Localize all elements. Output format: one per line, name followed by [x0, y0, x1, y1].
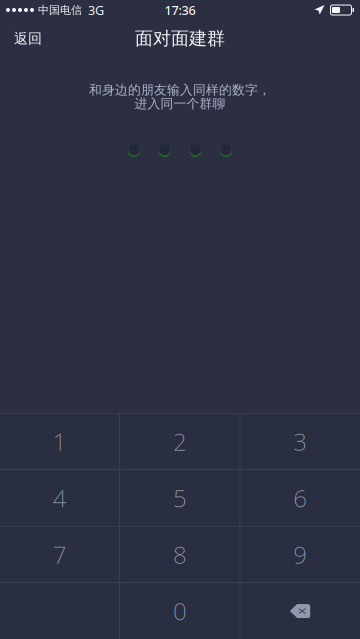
button[interactable]: 返回: [0, 22, 56, 55]
staticText: 0: [173, 595, 187, 627]
staticText: 1: [53, 425, 67, 458]
button[interactable]: 0: [120, 583, 240, 639]
staticText: 返回: [14, 30, 42, 47]
staticText: 3G: [88, 1, 104, 19]
staticText: 3: [293, 425, 307, 458]
button[interactable]: 5: [120, 470, 240, 526]
staticText: 5: [173, 482, 187, 514]
button[interactable]: Delete: [240, 583, 360, 639]
staticText: 和身边的朋友输入同样的数字，: [89, 82, 271, 98]
staticText: 6: [293, 482, 307, 514]
staticText: 17:36: [164, 1, 195, 19]
button[interactable]: 3: [240, 414, 360, 469]
button[interactable]: 7: [0, 527, 120, 582]
staticText: 7: [53, 538, 67, 571]
button[interactable]: 4: [0, 470, 120, 526]
button[interactable]: 9: [240, 527, 360, 582]
button[interactable]: 1: [0, 414, 120, 469]
staticText: 4: [53, 482, 67, 514]
staticText: 9: [293, 538, 307, 571]
button[interactable]: 6: [240, 470, 360, 526]
staticText: 进入同一个群聊: [134, 96, 225, 112]
staticText: 8: [173, 538, 187, 571]
button[interactable]: 2: [120, 414, 240, 469]
staticText: 面对面建群: [135, 27, 225, 50]
staticText: 2: [173, 425, 187, 458]
button[interactable]: 8: [120, 527, 240, 582]
staticText: 中国电信: [38, 3, 82, 17]
